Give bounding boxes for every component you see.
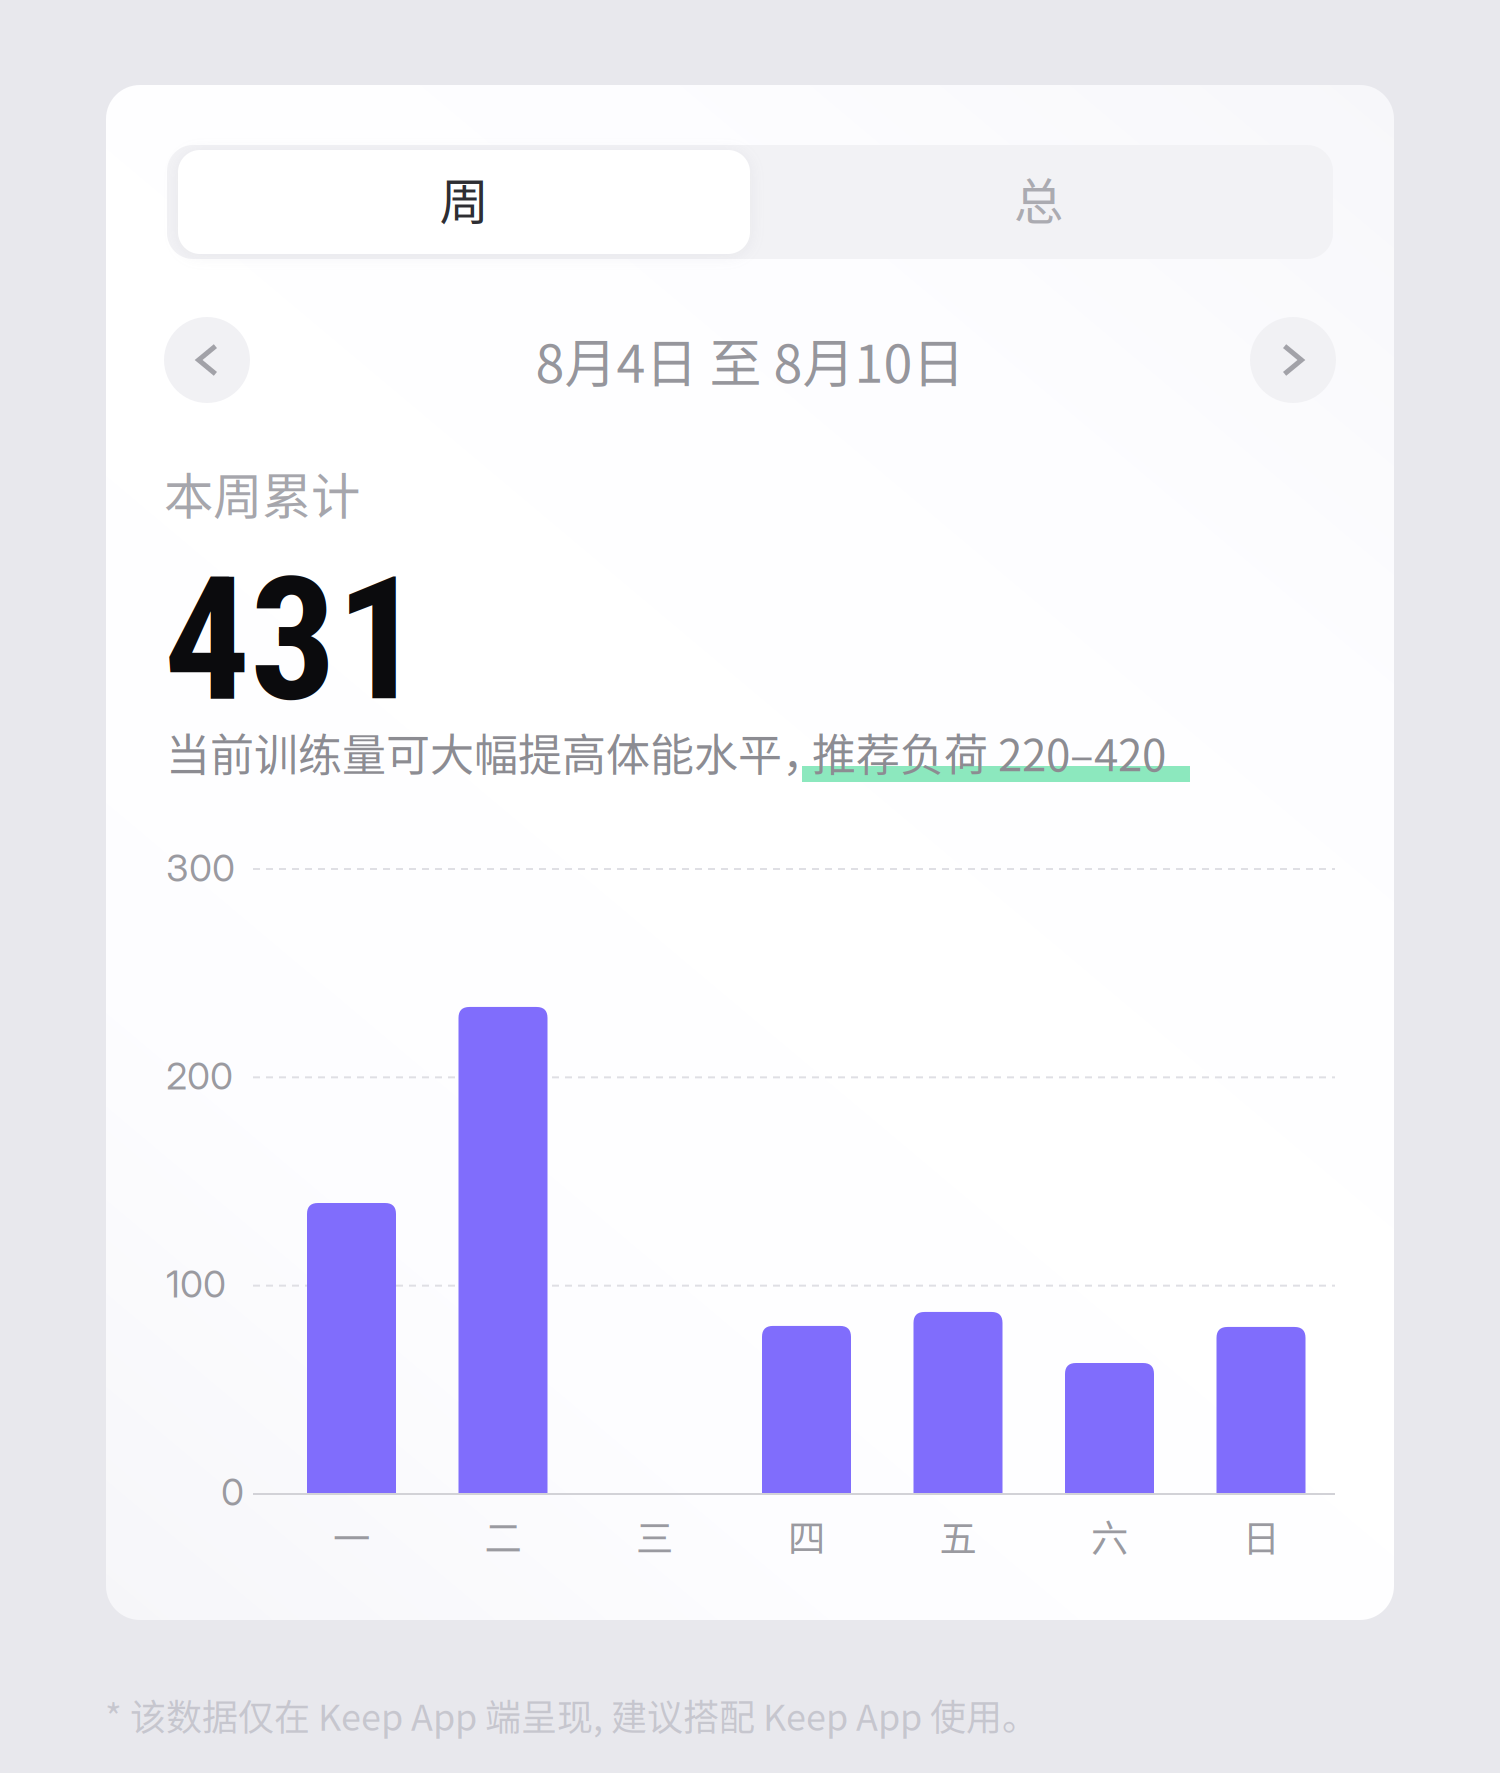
- staticText: 日: [1242, 1509, 1279, 1563]
- staticText: 五: [939, 1509, 976, 1563]
- staticText: 三: [636, 1509, 673, 1563]
- staticText: 本周累计: [164, 457, 360, 528]
- staticText: 六: [1091, 1509, 1128, 1563]
- staticText: 二: [484, 1509, 521, 1563]
- staticText: 431: [164, 540, 422, 740]
- staticText: 四: [788, 1509, 825, 1563]
- staticText: 一: [333, 1509, 370, 1563]
- staticText: 当前训练量可大幅提高体能水平，: [166, 720, 826, 784]
- staticText: 100: [166, 1261, 226, 1307]
- staticText: 300: [166, 845, 235, 891]
- staticText: 周: [439, 162, 488, 234]
- staticText: 0: [221, 1469, 244, 1515]
- staticText: 总: [1014, 162, 1063, 234]
- button[interactable]: 下一周: [1250, 317, 1336, 403]
- button[interactable]: 上一周: [164, 317, 250, 403]
- staticText: 200: [166, 1053, 233, 1099]
- button[interactable]: 周: [178, 150, 750, 254]
- button[interactable]: 总: [744, 145, 1333, 259]
- staticText: 8月4日 至 8月10日: [535, 322, 964, 398]
- staticText: 推荐负荷 220–420: [812, 720, 1166, 784]
- staticText: * 该数据仅在 Keep App 端呈现, 建议搭配 Keep App 使用。: [105, 1689, 1038, 1741]
